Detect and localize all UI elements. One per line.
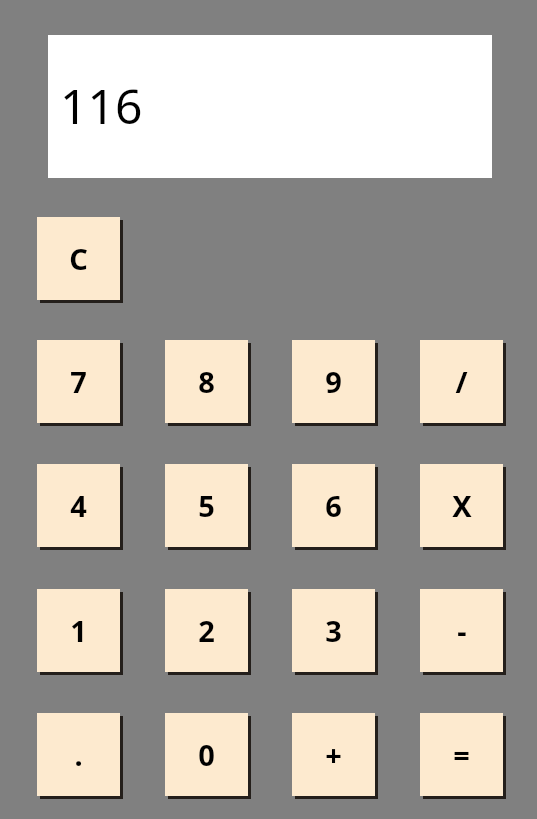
staticText: 0	[198, 735, 215, 774]
button[interactable]: 2	[165, 589, 248, 672]
staticText: +	[325, 735, 342, 774]
staticText: .	[74, 735, 83, 774]
staticText: 116	[60, 73, 143, 138]
button[interactable]: 8	[165, 340, 248, 423]
staticText: 3	[325, 611, 342, 650]
button[interactable]: .	[37, 713, 120, 796]
staticText: 4	[70, 486, 87, 525]
button[interactable]: +	[292, 713, 375, 796]
button[interactable]: 1	[37, 589, 120, 672]
staticText: 9	[325, 362, 342, 401]
button[interactable]: 0	[165, 713, 248, 796]
staticText: 6	[325, 486, 342, 525]
staticText: X	[452, 486, 472, 525]
button[interactable]: -	[420, 589, 503, 672]
staticText: 7	[70, 362, 87, 401]
button[interactable]: 7	[37, 340, 120, 423]
button[interactable]: C	[37, 217, 120, 300]
button[interactable]: =	[420, 713, 503, 796]
staticText: /	[455, 362, 468, 401]
button[interactable]: 9	[292, 340, 375, 423]
staticText: 2	[198, 611, 215, 650]
staticText: 1	[70, 611, 87, 650]
staticText: C	[69, 239, 88, 278]
button[interactable]: 6	[292, 464, 375, 547]
staticText: 5	[198, 486, 215, 525]
button[interactable]: 116	[48, 35, 492, 178]
staticText: -	[457, 611, 467, 650]
button[interactable]: /	[420, 340, 503, 423]
button[interactable]: 3	[292, 589, 375, 672]
staticText: 8	[198, 362, 215, 401]
button[interactable]: X	[420, 464, 503, 547]
button[interactable]: 5	[165, 464, 248, 547]
staticText: =	[453, 735, 470, 774]
button[interactable]: 4	[37, 464, 120, 547]
